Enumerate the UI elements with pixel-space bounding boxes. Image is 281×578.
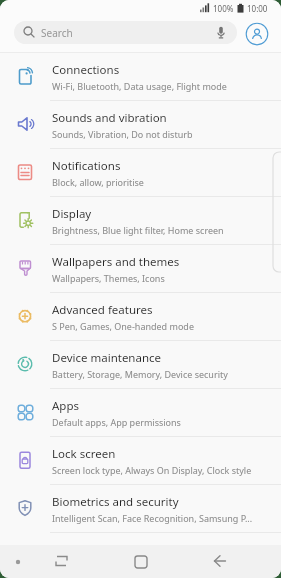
staticText: Sounds, Vibration, Do not disturb [52,128,193,140]
button[interactable]: Advanced features [0,293,281,341]
staticText: Wallpapers, Themes, Icons [52,272,165,284]
staticText: Default apps, App permissions [52,416,181,428]
staticText: Battery, Storage, Memory, Device securit… [52,368,228,380]
staticText: Connections [52,62,120,78]
staticText: 100% [213,3,234,14]
staticText: Wallpapers and themes [52,254,180,270]
staticText: Wi-Fi, Bluetooth, Data usage, Flight mod… [52,80,227,92]
staticText: Notifications [52,158,121,174]
button[interactable] [194,545,246,578]
staticText: Device maintenance [52,350,162,366]
button[interactable]: Display [0,197,281,245]
staticText: Display [52,206,92,222]
staticText: Apps [52,398,80,414]
staticText: Biometrics and security [52,494,179,510]
button[interactable]: Search [14,21,237,44]
staticText: 10:00 [247,3,268,14]
button[interactable]: Biometrics and security [0,485,281,533]
button[interactable]: Notifications [0,149,281,197]
button[interactable]: Sounds and vibration [0,101,281,149]
staticText: Brightness, Blue light filter, Home scre… [52,224,224,236]
staticText: Advanced features [52,302,153,318]
button[interactable]: Wallpapers and themes [0,245,281,293]
button[interactable]: Apps [0,389,281,437]
button[interactable] [115,545,167,578]
staticText: Block, allow, prioritise [52,176,144,188]
staticText: Lock screen [52,446,116,462]
staticText: S Pen, Games, One-handed mode [52,320,194,332]
button[interactable]: Device maintenance [0,341,281,389]
staticText: Screen lock type, Always On Display, Clo… [52,464,252,476]
staticText: Sounds and vibration [52,110,167,126]
button[interactable]: Lock screen [0,437,281,485]
button[interactable] [36,545,88,578]
staticText: Search [41,26,73,40]
button[interactable] [245,22,269,46]
button[interactable]: Connections [0,53,281,101]
staticText: Intelligent Scan, Face Recognition, Sams… [52,512,253,524]
button[interactable] [214,26,228,40]
